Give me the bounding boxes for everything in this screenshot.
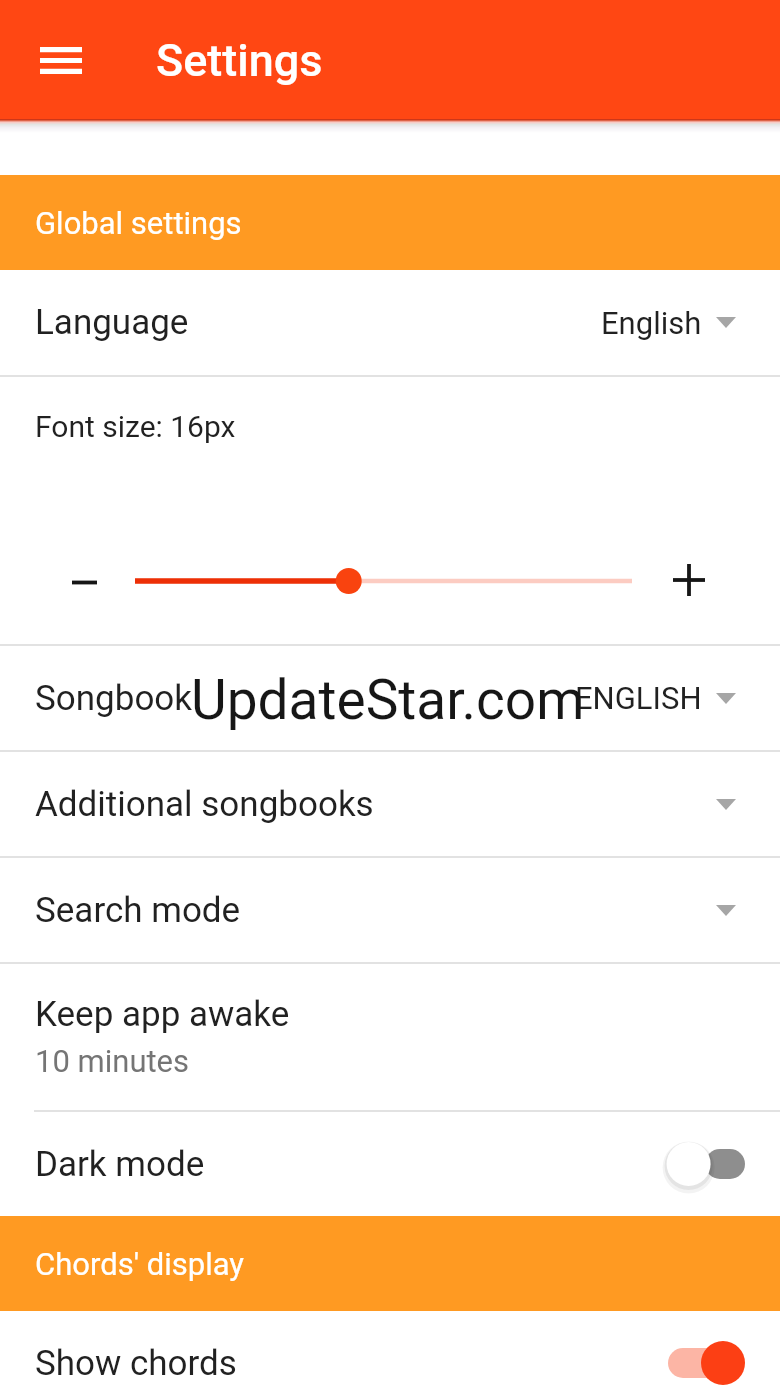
staticText: English	[601, 305, 702, 341]
button[interactable]: Songbook	[0, 646, 780, 750]
button[interactable]: Additional songbooks	[0, 752, 780, 856]
button[interactable]: Search mode	[0, 858, 780, 962]
staticText: Keep app awake	[35, 994, 290, 1035]
staticText: Language	[35, 302, 189, 343]
button[interactable]: Show chords	[0, 1311, 780, 1386]
staticText: Dark mode	[35, 1144, 205, 1185]
staticText: Songbook	[35, 678, 193, 719]
button[interactable]: Dark mode	[0, 1112, 780, 1216]
staticText: ENGLISH	[575, 680, 702, 716]
staticText: Global settings	[35, 205, 242, 241]
button[interactable]: Language	[0, 270, 780, 375]
button[interactable]: Increase font size	[659, 550, 719, 610]
staticText: Settings	[156, 34, 323, 87]
staticText: Additional songbooks	[35, 784, 374, 825]
button[interactable]: Open navigation menu	[21, 20, 101, 100]
staticText: Search mode	[35, 890, 241, 931]
staticText: Font size: 16px	[35, 409, 236, 444]
staticText: Show chords	[35, 1343, 237, 1384]
button[interactable]: Keep app awake	[0, 964, 780, 1110]
staticText: UpdateStar.com	[191, 668, 585, 732]
staticText: Chords' display	[35, 1246, 245, 1282]
button[interactable]: Decrease font size	[54, 552, 114, 612]
staticText: 10 minutes	[35, 1043, 190, 1079]
button[interactable]: Font size: 16px	[0, 377, 780, 644]
